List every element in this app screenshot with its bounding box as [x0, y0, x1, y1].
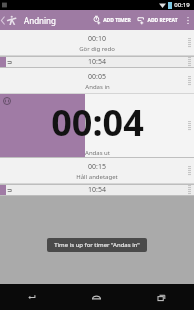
staticText: 00:05 — [88, 72, 106, 82]
button[interactable]: Back — [0, 284, 64, 310]
staticText: 10:54 — [88, 57, 106, 67]
staticText: Andning — [24, 15, 56, 26]
button[interactable]: 10:54 — [0, 56, 194, 68]
staticText: 00:19 — [174, 1, 190, 9]
button[interactable]: Back — [0, 10, 18, 30]
button[interactable]: 00:10 — [0, 30, 194, 56]
staticText: 00:04 — [51, 98, 144, 147]
button[interactable]: More options — [182, 10, 194, 30]
button[interactable]: ADD REPEAT — [136, 10, 179, 30]
button[interactable]: ADD TIMER — [92, 10, 132, 30]
staticText: Andas ut — [85, 149, 110, 157]
button[interactable]: Pause — [3, 97, 11, 105]
button[interactable]: 10:54 — [0, 184, 194, 196]
staticText: 00:10 — [88, 34, 106, 44]
button[interactable]: Recents — [129, 284, 194, 310]
button[interactable]: 00:15 — [0, 158, 194, 184]
staticText: Gör dig redo — [79, 45, 115, 53]
staticText: 10:54 — [88, 185, 106, 195]
staticText: 00:15 — [88, 162, 106, 172]
button[interactable]: 00:04 — [0, 94, 194, 158]
staticText: Håll andetaget — [76, 173, 118, 181]
staticText: ADD TIMER — [103, 17, 131, 24]
staticText: Andas in — [85, 83, 110, 91]
button[interactable]: 00:05 — [0, 68, 194, 94]
staticText: ADD REPEAT — [147, 17, 178, 24]
staticText: Time is up for timer "Andas in" — [54, 241, 140, 249]
button[interactable]: Home — [64, 284, 129, 310]
